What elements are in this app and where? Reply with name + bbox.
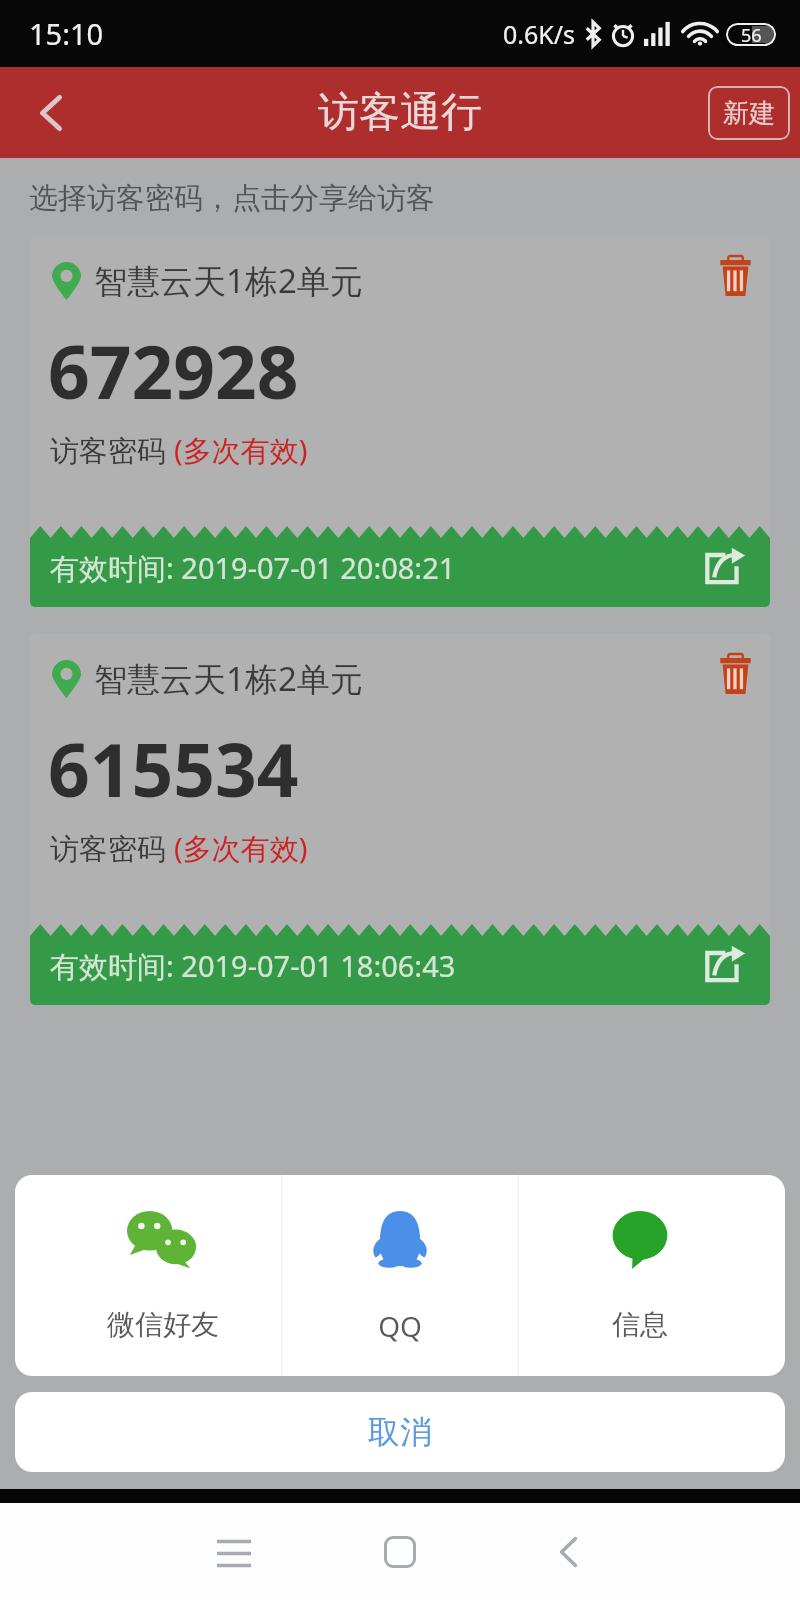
button[interactable]: Share: [695, 936, 753, 994]
button[interactable]: Share: [695, 538, 753, 596]
staticText: 615534: [48, 719, 299, 818]
staticText: (多次有效): [174, 828, 308, 868]
staticText: 672928: [48, 321, 299, 420]
button[interactable]: 智慧云天1栋2单元: [30, 634, 770, 1005]
staticText: 56: [741, 23, 762, 46]
staticText: 访客密码: [50, 828, 174, 868]
staticText: QQ: [378, 1307, 422, 1345]
button[interactable]: 信息: [519, 1175, 785, 1376]
button[interactable]: 取消: [15, 1392, 785, 1472]
button[interactable]: Home: [356, 1508, 444, 1596]
staticText: 有效时间: 2019-07-01 20:08:21: [50, 548, 456, 588]
button[interactable]: 新建: [708, 86, 790, 140]
staticText: 新建: [723, 97, 775, 130]
staticText: 15:10: [29, 14, 104, 53]
button[interactable]: Menu: [190, 1508, 278, 1596]
staticText: 有效时间: 2019-07-01 18:06:43: [50, 946, 456, 986]
staticText: (多次有效): [174, 430, 308, 470]
button[interactable]: 微信好友: [15, 1175, 281, 1376]
staticText: 0.6K/s: [503, 17, 576, 51]
staticText: 智慧云天1栋2单元: [94, 656, 363, 701]
button[interactable]: Delete: [707, 646, 763, 702]
button[interactable]: Back: [524, 1508, 612, 1596]
button[interactable]: 智慧云天1栋2单元: [30, 236, 770, 607]
staticText: 取消: [368, 1412, 432, 1452]
staticText: 访客通行: [318, 87, 482, 139]
staticText: 访客密码: [50, 430, 174, 470]
button[interactable]: QQ: [282, 1175, 518, 1376]
button[interactable]: Back: [5, 67, 97, 158]
staticText: 选择访客密码，点击分享给访客: [29, 180, 435, 217]
staticText: 智慧云天1栋2单元: [94, 258, 363, 303]
staticText: 信息: [612, 1307, 668, 1342]
button[interactable]: Delete: [707, 248, 763, 304]
staticText: 微信好友: [107, 1307, 219, 1342]
